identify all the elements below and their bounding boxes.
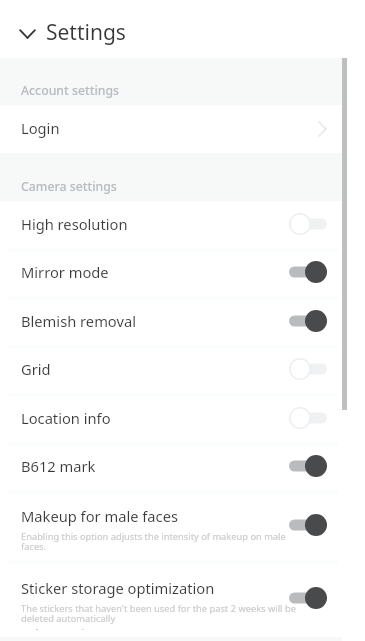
staticText: Sticker storage optimization (21, 578, 215, 598)
button[interactable]: Mirror mode (0, 250, 342, 298)
button[interactable]: Login (0, 105, 342, 153)
staticText: Other settings (21, 626, 106, 630)
staticText: Mirror mode (21, 262, 109, 282)
button[interactable]: Sticker storage optimization (0, 562, 342, 637)
button[interactable]: Blemish removal (0, 298, 342, 347)
staticText: Makeup for male faces (21, 506, 178, 526)
button[interactable]: High resolution (0, 201, 342, 250)
button[interactable]: B612 mark (0, 444, 342, 492)
staticText: Account settings (21, 82, 120, 99)
staticText: The stickers that haven't been used for … (21, 602, 302, 625)
button[interactable]: Collapse (14, 25, 40, 43)
staticText: Enabling this option adjusts the intensi… (21, 530, 302, 553)
staticText: B612 mark (21, 456, 96, 476)
staticText: Settings (46, 18, 126, 47)
staticText: Grid (21, 359, 51, 379)
staticText: High resolution (21, 214, 128, 234)
staticText: Location info (21, 408, 111, 428)
button[interactable]: Makeup for male faces (0, 492, 342, 562)
staticText: Blemish removal (21, 311, 136, 331)
staticText: Login (21, 118, 60, 138)
button[interactable]: Grid (0, 347, 342, 395)
staticText: Camera settings (21, 178, 117, 195)
button[interactable]: Location info (0, 395, 342, 444)
